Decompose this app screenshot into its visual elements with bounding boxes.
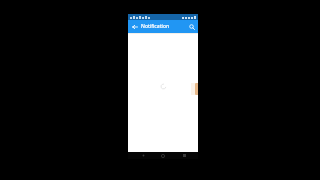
button[interactable]: Search: [185, 20, 198, 33]
button[interactable]: Scroll indicator: [195, 83, 198, 95]
button[interactable]: Recent apps: [178, 152, 190, 159]
staticText: Notification: [141, 23, 185, 30]
button[interactable]: Back: [128, 20, 141, 33]
button[interactable]: Back: [137, 152, 149, 159]
button[interactable]: Home: [157, 152, 169, 159]
